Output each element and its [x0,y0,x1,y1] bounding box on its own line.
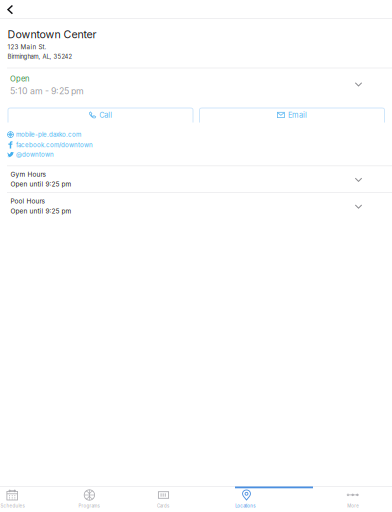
staticText: 5:10 am - 9:25 pm [10,86,84,96]
button[interactable]: Email [199,107,385,122]
button[interactable]: Locations [0,486,392,512]
staticText: 123 Main St. [7,43,46,51]
staticText: Pool Hours [11,197,45,205]
staticText: facebook.com/downtown [16,141,93,149]
staticText: Gym Hours [11,170,46,178]
button[interactable]: Schedules [0,486,392,512]
staticText: Cards [157,503,169,508]
staticText: Call [99,110,112,119]
staticText: @downtown [16,151,54,158]
button[interactable]: Open [0,68,392,106]
staticText: Programs [78,503,99,508]
button[interactable]: Programs [0,486,392,512]
staticText: Birmingham, AL, 35242 [7,53,72,60]
button[interactable]: @downtown [0,149,120,160]
staticText: Locations [235,503,255,508]
staticText: Open [10,74,29,83]
button[interactable]: Gym Hours [0,167,392,193]
staticText: mobile-ple.daxko.com [16,131,81,138]
button[interactable]: More [0,486,392,512]
button[interactable]: mobile-ple.daxko.com [0,129,120,140]
staticText: Downtown Center [7,28,96,41]
button[interactable]: Call [7,107,193,122]
button[interactable]: facebook.com/downtown [0,140,120,150]
staticText: More [347,503,359,508]
button[interactable]: Pool Hours [0,194,392,220]
staticText: Schedules [1,503,25,508]
staticText: Open until 9:25 pm [11,207,72,215]
button[interactable]: Back [1,1,19,19]
staticText: Open until 9:25 pm [11,180,72,188]
staticText: Email [288,110,307,119]
button[interactable]: Cards [0,486,392,512]
